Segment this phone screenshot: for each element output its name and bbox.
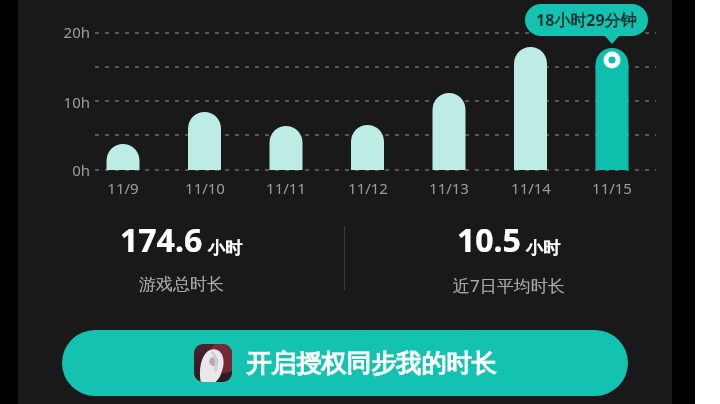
staticText: 11/10 — [165, 178, 245, 198]
staticText: 20h — [28, 22, 90, 42]
staticText: 10.5 — [457, 218, 521, 262]
staticText: 近7日平均时长 — [453, 274, 565, 297]
staticText: 小时 — [526, 238, 560, 259]
staticText: 小时 — [208, 238, 242, 259]
staticText: 18小时29分钟 — [536, 9, 637, 31]
staticText: 11/9 — [83, 178, 163, 198]
button[interactable]: Game icon — [62, 330, 628, 396]
staticText: 开启授权同步我的时长 — [246, 348, 496, 379]
staticText: 11/13 — [409, 178, 489, 198]
button[interactable]: 10.5 — [345, 218, 672, 297]
staticText: 10h — [28, 92, 90, 112]
staticText: 11/12 — [328, 178, 408, 198]
staticText: 11/15 — [572, 178, 652, 198]
staticText: 0h — [28, 160, 90, 180]
other: Game icon — [194, 344, 232, 382]
button[interactable]: 174.6 — [18, 218, 344, 295]
staticText: 174.6 — [120, 218, 203, 262]
staticText: 游戏总时长 — [139, 274, 224, 295]
staticText: 11/11 — [246, 178, 326, 198]
staticText: 11/14 — [491, 178, 571, 198]
